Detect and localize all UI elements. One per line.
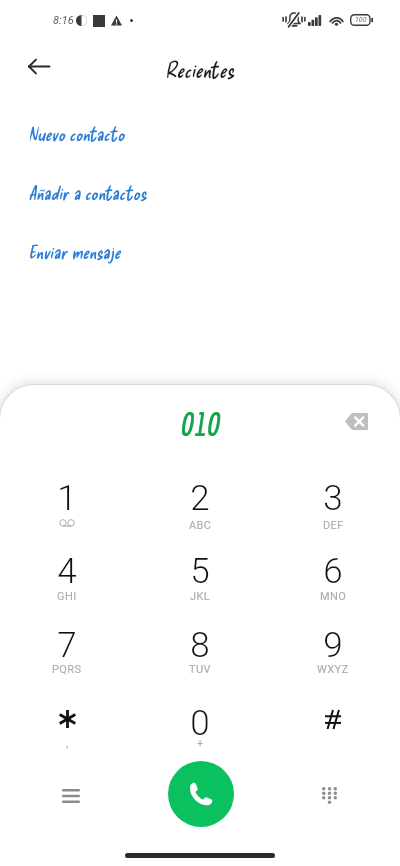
staticText: ,	[66, 737, 69, 750]
button[interactable]: 9	[289, 617, 377, 687]
button[interactable]: 7	[23, 617, 111, 687]
button[interactable]: Call	[168, 761, 234, 827]
staticText: 3	[323, 478, 343, 519]
staticText: Nuevo contacto	[28, 122, 125, 145]
button[interactable]	[289, 695, 377, 765]
button[interactable]: 5	[156, 543, 244, 613]
staticText: JKL	[190, 590, 211, 603]
button[interactable]: 6	[289, 543, 377, 613]
button[interactable]: 3	[289, 470, 377, 540]
staticText: 0	[190, 703, 210, 744]
staticText: +	[197, 737, 204, 750]
button[interactable]: Nuevo contacto	[0, 113, 400, 153]
staticText: 6	[323, 551, 343, 592]
staticText: MNO	[320, 590, 347, 603]
staticText: 4	[57, 551, 77, 592]
button[interactable]: 1	[23, 470, 111, 540]
button[interactable]: Dialpad	[309, 775, 349, 815]
button[interactable]: 2	[156, 470, 244, 540]
staticText: 9	[323, 625, 343, 666]
button[interactable]: 4	[23, 543, 111, 613]
button[interactable]: Backspace	[336, 401, 376, 441]
staticText: ABC	[189, 519, 212, 532]
button[interactable]: 0	[156, 695, 244, 765]
staticText: 8	[190, 625, 210, 666]
button[interactable]: Añadir a contactos	[0, 172, 400, 212]
staticText: 7	[57, 625, 77, 666]
staticText: Recientes	[165, 56, 235, 82]
staticText: GHI	[57, 590, 77, 603]
staticText: 010	[180, 406, 220, 443]
staticText: Enviar mensaje	[28, 240, 121, 263]
staticText: 5	[190, 551, 210, 592]
button[interactable]: Back	[18, 46, 59, 87]
button[interactable]: ,	[23, 695, 111, 765]
button[interactable]: Enviar mensaje	[0, 231, 400, 271]
staticText: 2	[190, 478, 210, 519]
staticText: DEF	[323, 519, 344, 532]
staticText: PQRS	[52, 663, 82, 676]
staticText: WXYZ	[317, 663, 349, 676]
button[interactable]: 8	[156, 617, 244, 687]
staticText: 1	[57, 478, 77, 519]
staticText: 8:16	[53, 14, 74, 27]
staticText: 100	[355, 16, 367, 24]
button[interactable]: Call log	[51, 776, 91, 816]
staticText: Añadir a contactos	[28, 181, 147, 204]
staticText: TUV	[189, 663, 211, 676]
